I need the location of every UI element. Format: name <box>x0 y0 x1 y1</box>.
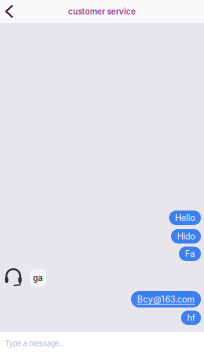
staticText: Fa <box>185 248 195 259</box>
staticText: ga <box>33 273 43 283</box>
staticText: customer service <box>68 7 136 16</box>
button[interactable]: hf <box>181 310 201 325</box>
staticText: hf <box>187 312 195 323</box>
button[interactable]: Type a message... <box>0 332 204 355</box>
staticText: Bcy@163.com <box>137 294 195 304</box>
button[interactable]: Fa <box>179 246 201 261</box>
button[interactable]: Back <box>0 0 21 23</box>
staticText: Hello <box>175 213 195 223</box>
staticText: Hido <box>177 231 195 242</box>
button[interactable]: ga <box>30 269 46 287</box>
button[interactable]: Bcy@163.com <box>131 291 201 307</box>
staticText: Type a message... <box>5 339 65 348</box>
button[interactable]: Hello <box>169 211 201 225</box>
button[interactable]: Hido <box>171 229 201 244</box>
